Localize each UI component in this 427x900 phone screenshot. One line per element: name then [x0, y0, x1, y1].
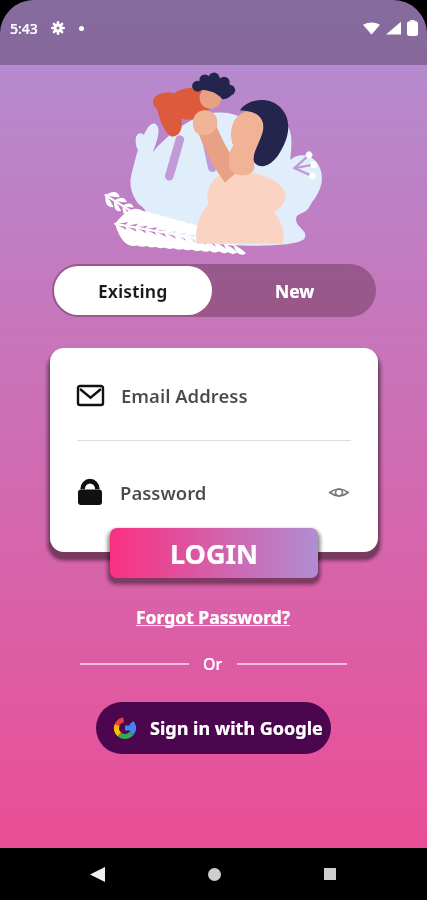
staticText: Sign in with Google [150, 716, 323, 741]
button[interactable]: Back [77, 854, 117, 894]
button[interactable]: Email Address [78, 377, 358, 413]
button[interactable]: New [214, 264, 376, 317]
staticText: Or [203, 653, 223, 675]
button[interactable]: Existing [54, 266, 212, 315]
staticText: Password [120, 480, 207, 505]
staticText: Email Address [121, 383, 248, 408]
button[interactable]: Sign in with Google [96, 702, 331, 754]
staticText: 5:43 [10, 19, 38, 38]
button[interactable]: LOGIN [110, 528, 318, 578]
button[interactable]: Password [78, 474, 352, 510]
staticText: Forgot Password? [136, 605, 291, 629]
staticText: New [275, 279, 315, 303]
staticText: LOGIN [170, 535, 258, 572]
button[interactable]: Show password [326, 479, 352, 505]
button[interactable]: Forgot Password? [130, 603, 297, 631]
staticText: Existing [98, 279, 168, 303]
button[interactable]: Home [194, 854, 234, 894]
button[interactable]: Recents [310, 854, 350, 894]
